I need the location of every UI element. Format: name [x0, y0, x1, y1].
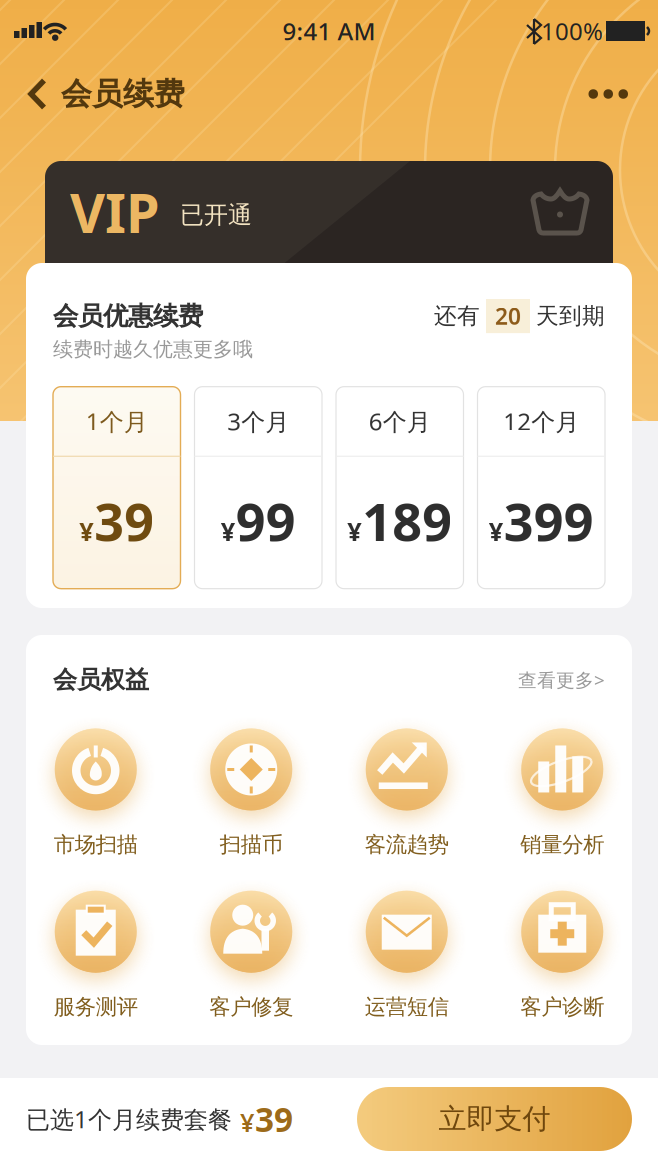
staticText: 市场扫描 — [54, 831, 138, 858]
staticText: 服务测评 — [54, 994, 138, 1020]
button[interactable]: 销量分析 — [520, 728, 604, 858]
staticText: 天到期 — [536, 302, 605, 330]
staticText: 6个月 — [369, 405, 431, 437]
staticText: ¥ — [489, 514, 503, 548]
staticText: 扫描币 — [220, 831, 283, 858]
staticText: ¥ — [347, 514, 361, 548]
button[interactable]: 运营短信 — [365, 891, 449, 1020]
button[interactable]: 服务测评 — [54, 891, 138, 1020]
staticText: ¥ — [79, 514, 93, 548]
staticText: 已开通 — [180, 200, 252, 230]
staticText: 客流趋势 — [365, 831, 449, 858]
staticText: 客户修复 — [209, 994, 293, 1020]
staticText: VIP — [70, 175, 160, 249]
staticText: 189 — [362, 486, 452, 555]
staticText: ¥ — [240, 1105, 254, 1139]
staticText: 已选1个月续费套餐 — [26, 1103, 232, 1135]
button[interactable]: 客户诊断 — [520, 891, 604, 1020]
button[interactable]: 市场扫描 — [54, 728, 138, 858]
staticText: 客户诊断 — [520, 994, 604, 1020]
staticText: 运营短信 — [365, 994, 449, 1020]
staticText: 39 — [94, 486, 154, 555]
button[interactable]: 1个月 — [53, 387, 180, 589]
button[interactable]: 查看更多> — [518, 667, 605, 692]
button[interactable]: 客户修复 — [209, 891, 293, 1020]
button[interactable]: 3个月 — [194, 387, 322, 589]
staticText: 会员续费 — [61, 75, 185, 113]
button[interactable]: More — [588, 89, 658, 99]
button[interactable]: 扫描币 — [210, 728, 292, 858]
staticText: 立即支付 — [438, 1102, 550, 1136]
button[interactable]: 12个月 — [477, 387, 605, 589]
staticText: 12个月 — [503, 405, 579, 437]
staticText: 销量分析 — [520, 831, 604, 858]
button[interactable]: 立即支付 — [357, 1087, 632, 1151]
button[interactable]: 客流趋势 — [365, 728, 449, 858]
staticText: ¥ — [221, 514, 235, 548]
staticText: 3个月 — [227, 405, 289, 437]
staticText: 100% — [541, 15, 603, 47]
staticText: 39 — [255, 1097, 293, 1141]
staticText: 会员权益 — [53, 665, 149, 694]
staticText: 查看更多> — [518, 667, 605, 692]
staticText: 1个月 — [86, 405, 148, 437]
button[interactable]: Back — [0, 75, 185, 113]
staticText: 还有 — [434, 302, 480, 330]
staticText: 99 — [236, 486, 296, 555]
staticText: 20 — [495, 301, 521, 331]
button[interactable]: 6个月 — [336, 387, 463, 589]
staticText: 续费时越久优惠更多哦 — [53, 337, 253, 362]
staticText: 会员优惠续费 — [53, 300, 203, 332]
staticText: 399 — [504, 486, 594, 555]
staticText: 9:41 AM — [282, 15, 375, 47]
